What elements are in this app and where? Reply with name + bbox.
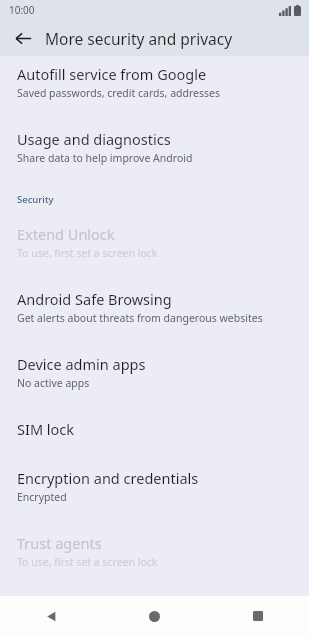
staticText: Security — [17, 193, 54, 206]
button[interactable]: Usage and diagnostics — [0, 116, 309, 181]
staticText: 10:00 — [9, 3, 35, 17]
button[interactable]: Back — [0, 596, 103, 636]
staticText: Share data to help improve Android — [17, 151, 193, 165]
button[interactable]: Trust agents — [0, 520, 309, 585]
staticText: No active apps — [17, 376, 90, 390]
staticText: Get alerts about threats from dangerous … — [17, 311, 263, 325]
button[interactable]: Back — [6, 21, 40, 55]
staticText: Encrypted — [17, 490, 67, 504]
button[interactable]: Extend Unlock — [0, 214, 309, 276]
staticText: Trust agents — [17, 533, 102, 553]
staticText: Usage and diagnostics — [17, 129, 171, 149]
button[interactable]: Autofill service from Google — [0, 56, 309, 116]
button[interactable]: SIM lock — [0, 406, 309, 455]
staticText: To use, first set a screen lock — [17, 246, 158, 260]
button[interactable]: Device admin apps — [0, 341, 309, 406]
staticText: Autofill service from Google — [17, 64, 207, 84]
staticText: Extend Unlock — [17, 224, 115, 244]
button[interactable]: Encryption and credentials — [0, 455, 309, 520]
staticText: SIM lock — [17, 419, 75, 439]
staticText: Saved passwords, credit cards, addresses — [17, 86, 220, 100]
button[interactable]: Home — [103, 596, 206, 636]
staticText: Android Safe Browsing — [17, 289, 172, 309]
staticText: More security and privacy — [45, 28, 233, 49]
button[interactable]: Recent apps — [206, 596, 309, 636]
button[interactable]: Android Safe Browsing — [0, 276, 309, 341]
staticText: Device admin apps — [17, 354, 146, 374]
staticText: To use, first set a screen lock — [17, 555, 158, 569]
staticText: Encryption and credentials — [17, 468, 199, 488]
